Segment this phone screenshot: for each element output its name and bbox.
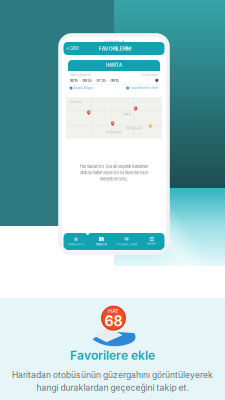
staticText: HAT	[108, 308, 119, 314]
button[interactable]: DİĞER	[139, 233, 164, 250]
staticText: Durak Bilgisi	[74, 86, 94, 90]
staticText: Favorilere ekle	[70, 348, 155, 363]
staticText: Favorilerime Ekle	[130, 86, 158, 90]
staticText: Haritadan bir durak seçerek listelenen	[80, 164, 148, 169]
staticText: 68	[104, 313, 122, 330]
staticText: 06:15 · 06:55 · 07:35 · 08:15	[70, 78, 119, 83]
staticText: Emek	[123, 112, 131, 116]
staticText: DİĞER	[147, 242, 156, 246]
button[interactable]: ANASAYFA	[63, 233, 89, 250]
staticText: ekleyebilirsiniz.	[100, 177, 128, 182]
staticText: ANASAYFA	[68, 243, 84, 246]
staticText: Kültürpark	[126, 126, 142, 130]
staticText: hangi duraklardan geçeceğini takip et.	[36, 382, 188, 393]
button[interactable]: FAVORİLERİM	[114, 233, 139, 250]
staticText: FAVORİLERİM	[116, 243, 137, 246]
staticText: otobüs hatlarından birini favorilerinize	[80, 170, 148, 175]
button[interactable]: HARİTA	[89, 233, 114, 250]
staticText: HARİTA	[96, 243, 107, 246]
staticText: Altıparmak	[106, 130, 122, 134]
staticText: FAVORİLERİM	[99, 45, 132, 52]
staticText: Haritadan otobüsünün güzergahını görüntü…	[12, 370, 213, 380]
staticText: Kalkış Saatleri	[70, 73, 92, 77]
staticText: GERİ	[70, 46, 79, 51]
staticText: HARİTA	[106, 62, 122, 68]
staticText: Tüm Saatler	[140, 73, 158, 77]
staticText: Yıldırım	[70, 100, 81, 104]
button[interactable]: Geri	[63, 42, 164, 55]
